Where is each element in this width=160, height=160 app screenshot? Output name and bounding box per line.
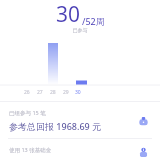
button[interactable]: 使用 13 张基础金 xyxy=(0,144,160,160)
staticText: 已参与 xyxy=(0,27,160,33)
staticText: 29 xyxy=(63,89,69,96)
staticText: 28 xyxy=(50,89,56,96)
staticText: /52周 xyxy=(82,15,105,27)
staticText: 已组参与 15 笔 xyxy=(9,109,46,117)
button[interactable]: 查看参考总回报 xyxy=(135,113,151,129)
staticText: 参考总回报 1968.69 元 xyxy=(9,120,102,132)
staticText: 26 xyxy=(24,89,30,96)
staticText: 27 xyxy=(37,89,43,96)
staticText: 30 xyxy=(56,0,81,29)
button[interactable]: 查看累计提现 xyxy=(135,146,151,158)
button[interactable]: 已组参与 15 笔 xyxy=(0,107,160,134)
staticText: 使用 13 张基础金 xyxy=(9,146,52,154)
staticText: 30 xyxy=(75,89,81,96)
